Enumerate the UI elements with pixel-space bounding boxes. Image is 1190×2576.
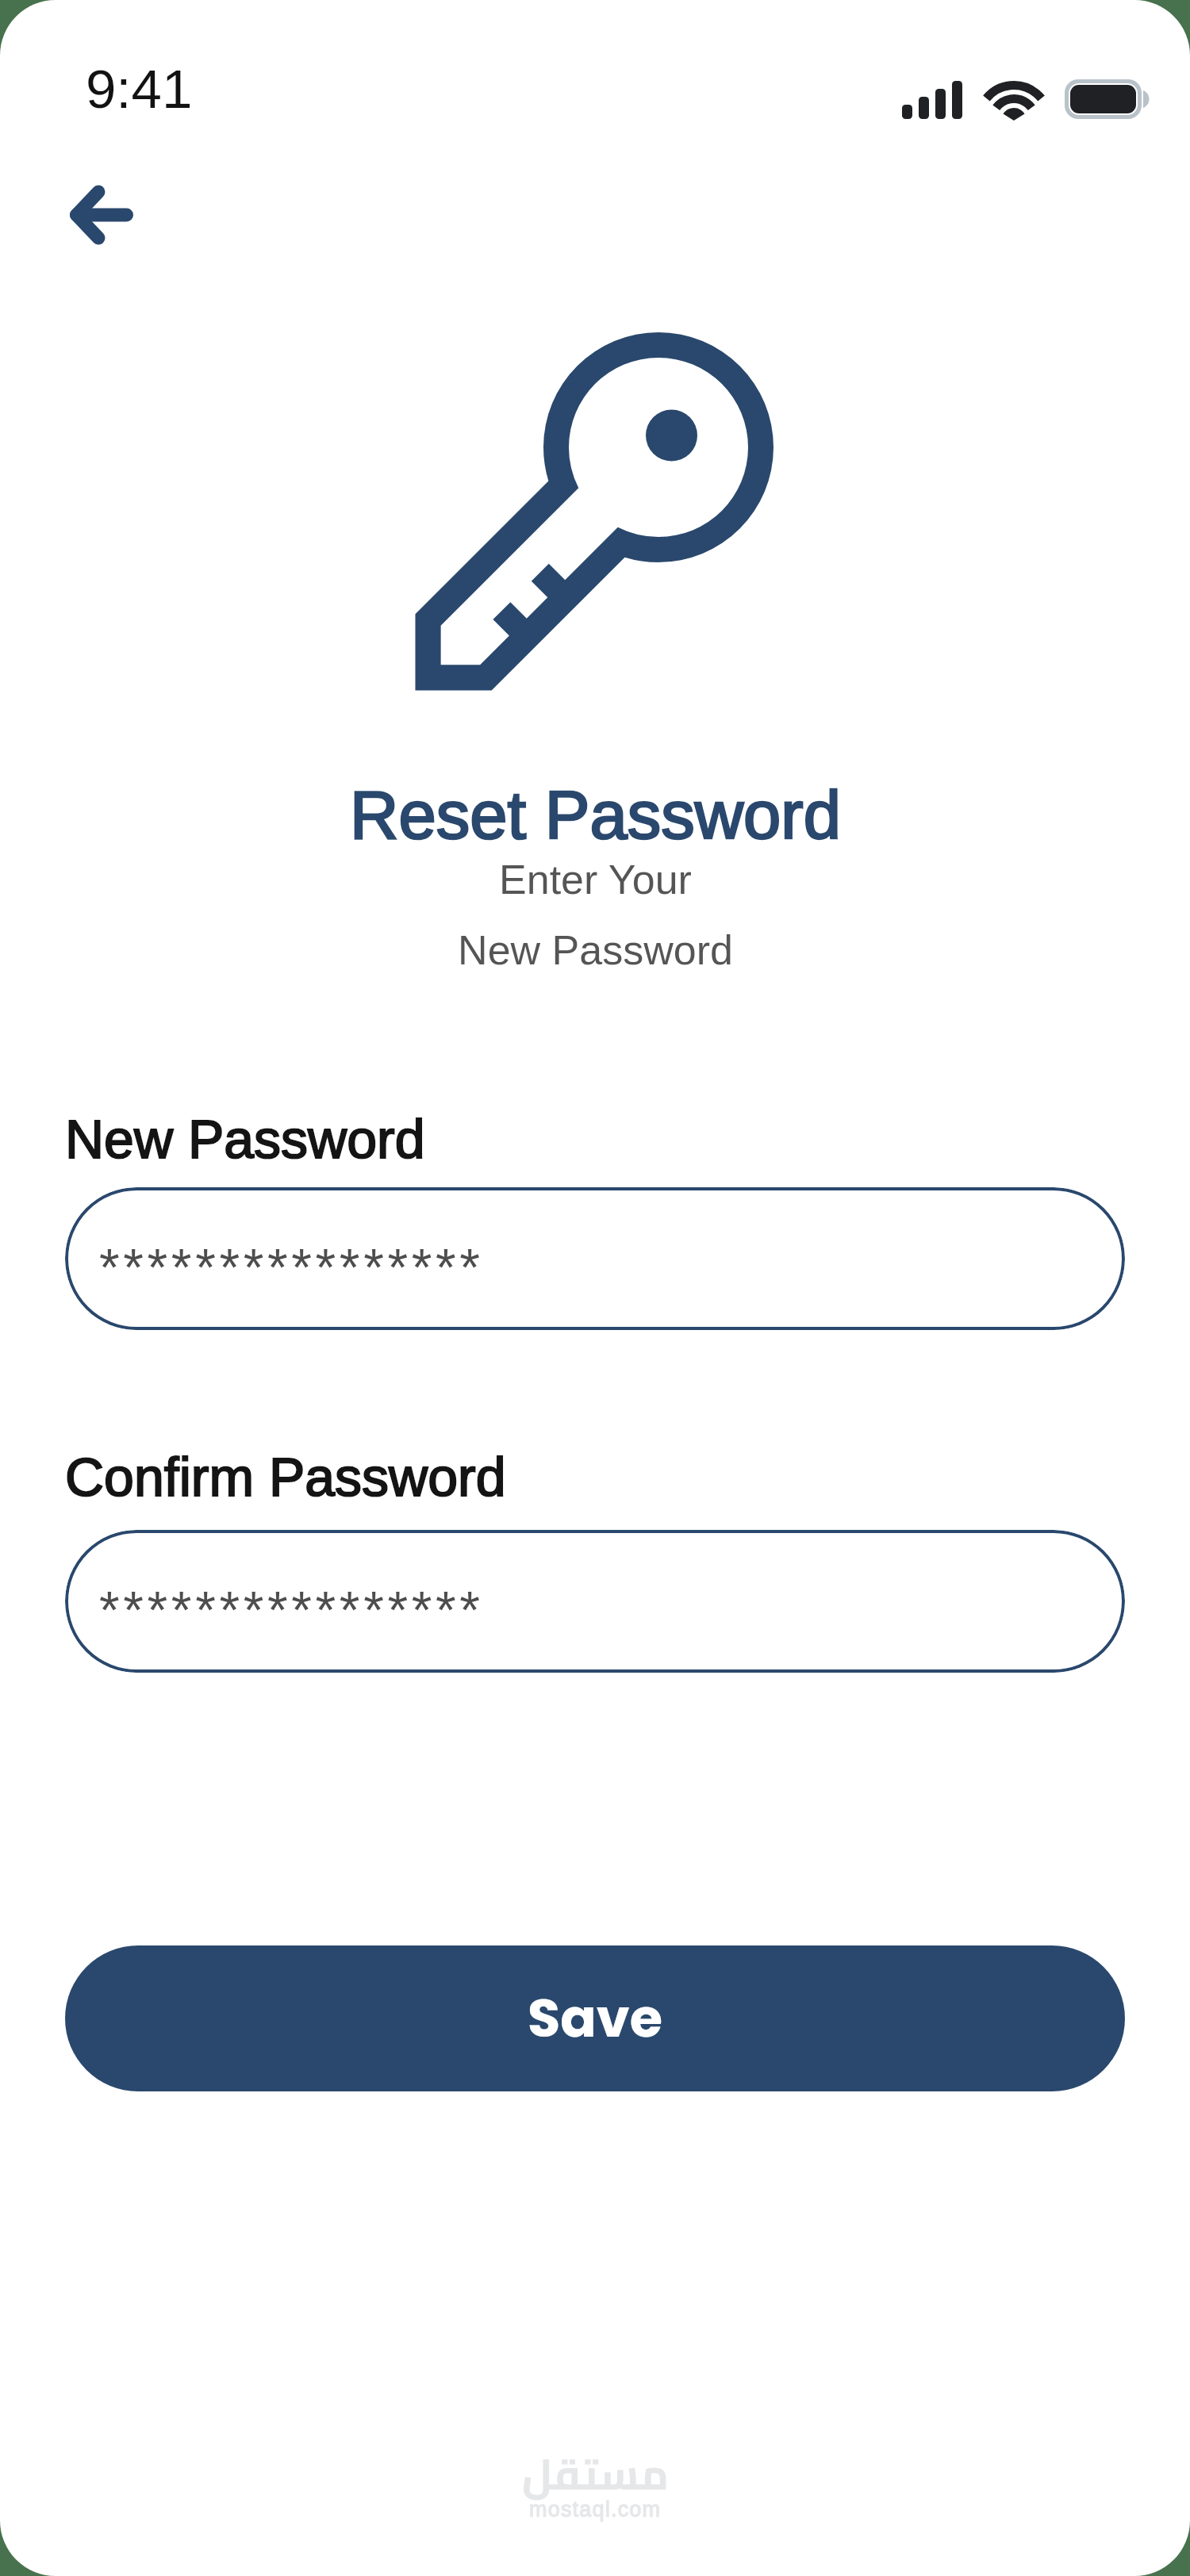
- button[interactable]: Save: [65, 1945, 1125, 2091]
- staticText: ****************: [99, 1238, 484, 1297]
- button[interactable]: ****************: [65, 1187, 1125, 1330]
- staticText: ****************: [99, 1581, 484, 1639]
- button[interactable]: Back: [46, 160, 157, 271]
- staticText: Save: [528, 1981, 662, 2056]
- staticText: 9:41: [86, 59, 193, 120]
- staticText: Enter Your: [499, 857, 692, 903]
- staticText: New Password: [65, 1109, 425, 1169]
- staticText: Confirm Password: [65, 1447, 506, 1507]
- staticText: mostaql.com: [529, 2497, 662, 2521]
- staticText: مستقل: [522, 2434, 669, 2514]
- staticText: Reset Password: [350, 777, 841, 853]
- staticText: New Password: [458, 927, 733, 973]
- button[interactable]: ****************: [65, 1530, 1125, 1673]
